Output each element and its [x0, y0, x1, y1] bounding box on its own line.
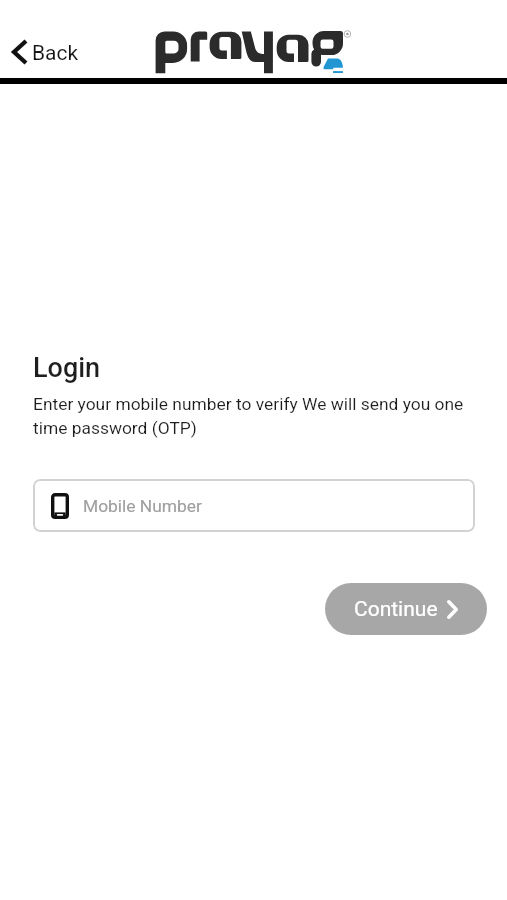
button[interactable]: Continue	[325, 583, 487, 635]
staticText: Mobile Number	[83, 496, 202, 516]
button[interactable]: Back	[9, 34, 83, 69]
button[interactable]: Mobile Number	[33, 479, 475, 532]
staticText: Login	[33, 352, 101, 384]
staticText: Enter your mobile number to verify We wi…	[33, 394, 475, 438]
other: Back	[13, 40, 27, 64]
staticText: Continue	[354, 597, 438, 622]
staticText: Back	[32, 41, 79, 66]
